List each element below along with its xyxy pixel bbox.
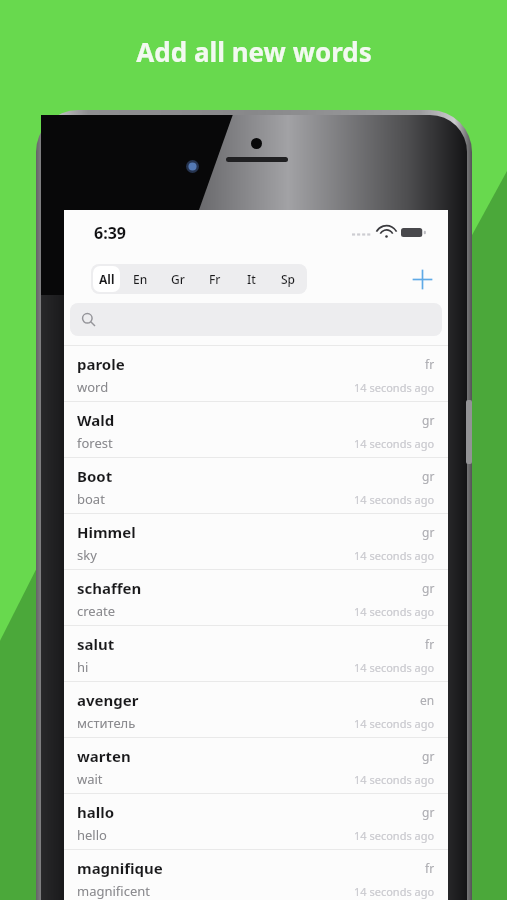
- staticText: Gr: [171, 271, 185, 287]
- button[interactable]: Fr: [198, 266, 231, 292]
- staticText: Fr: [209, 271, 221, 287]
- staticText: gr: [422, 524, 435, 540]
- staticText: 14 seconds ago: [354, 660, 435, 675]
- staticText: parole: [77, 354, 125, 374]
- staticText: 14 seconds ago: [354, 548, 435, 563]
- staticText: forest: [77, 434, 113, 452]
- staticText: 14 seconds ago: [354, 772, 435, 787]
- button[interactable]: Add word: [401, 258, 443, 300]
- button[interactable]: Wald: [64, 401, 448, 457]
- staticText: salut: [77, 634, 115, 654]
- button[interactable]: Search: [70, 303, 442, 336]
- staticText: 14 seconds ago: [354, 884, 435, 899]
- staticText: En: [133, 271, 148, 287]
- button[interactable]: En: [124, 266, 157, 292]
- staticText: 14 seconds ago: [354, 604, 435, 619]
- staticText: 14 seconds ago: [354, 436, 435, 451]
- button[interactable]: warten: [64, 737, 448, 793]
- staticText: schaffen: [77, 578, 142, 598]
- button[interactable]: Sp: [272, 266, 305, 292]
- staticText: It: [247, 271, 256, 287]
- staticText: Sp: [281, 271, 296, 287]
- staticText: magnificent: [77, 882, 150, 900]
- button[interactable]: parole: [64, 345, 448, 401]
- staticText: 14 seconds ago: [354, 716, 435, 731]
- staticText: sky: [77, 546, 97, 564]
- staticText: Himmel: [77, 522, 136, 542]
- staticText: en: [420, 692, 435, 708]
- button[interactable]: Gr: [161, 266, 194, 292]
- staticText: fr: [425, 356, 435, 372]
- staticText: Wald: [77, 410, 115, 430]
- staticText: create: [77, 602, 115, 620]
- staticText: All: [99, 271, 115, 287]
- staticText: 14 seconds ago: [354, 380, 435, 395]
- button[interactable]: magnifique: [64, 849, 448, 900]
- staticText: gr: [422, 748, 435, 764]
- staticText: мститель: [77, 714, 136, 732]
- staticText: hallo: [77, 802, 115, 822]
- button[interactable]: avenger: [64, 681, 448, 737]
- button[interactable]: schaffen: [64, 569, 448, 625]
- button[interactable]: Boot: [64, 457, 448, 513]
- staticText: word: [77, 378, 109, 396]
- staticText: Boot: [77, 466, 113, 486]
- staticText: hello: [77, 826, 107, 844]
- staticText: gr: [422, 468, 435, 484]
- button[interactable]: It: [235, 266, 268, 292]
- button[interactable]: Himmel: [64, 513, 448, 569]
- staticText: 6:39: [94, 222, 126, 244]
- button[interactable]: salut: [64, 625, 448, 681]
- button[interactable]: hallo: [64, 793, 448, 849]
- staticText: hi: [77, 658, 89, 676]
- staticText: gr: [422, 412, 435, 428]
- staticText: warten: [77, 746, 131, 766]
- staticText: gr: [422, 804, 435, 820]
- button[interactable]: All: [93, 266, 120, 292]
- staticText: boat: [77, 490, 105, 508]
- staticText: Add all new words: [136, 34, 372, 69]
- staticText: gr: [422, 580, 435, 596]
- staticText: magnifique: [77, 858, 163, 878]
- staticText: fr: [425, 636, 435, 652]
- staticText: 14 seconds ago: [354, 492, 435, 507]
- staticText: fr: [425, 860, 435, 876]
- staticText: wait: [77, 770, 103, 788]
- staticText: 14 seconds ago: [354, 828, 435, 843]
- staticText: avenger: [77, 690, 139, 710]
